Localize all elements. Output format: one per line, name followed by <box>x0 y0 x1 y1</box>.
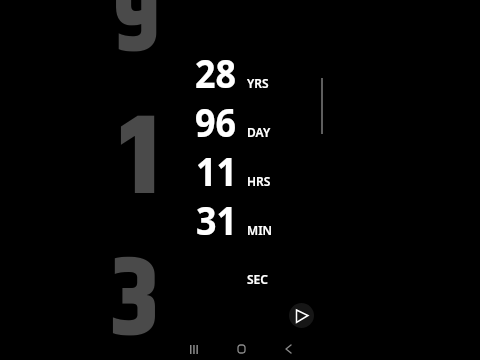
staticText: SEC <box>247 271 268 287</box>
staticText: 9 <box>113 0 160 104</box>
button[interactable]: Back <box>272 333 304 360</box>
staticText: 3 <box>110 218 159 360</box>
staticText: HRS <box>247 173 271 189</box>
button[interactable]: Home <box>225 333 257 360</box>
staticText: 96 <box>195 95 236 148</box>
button[interactable]: Recents <box>178 333 210 360</box>
staticText: 11 <box>196 144 237 197</box>
button[interactable]: Play <box>289 303 314 328</box>
staticText: YRS <box>247 75 269 91</box>
staticText: 31 <box>196 193 237 246</box>
staticText: MIN <box>247 222 273 238</box>
staticText: DAY <box>247 124 271 140</box>
staticText: 1 <box>119 76 160 246</box>
staticText: 28 <box>195 46 236 99</box>
